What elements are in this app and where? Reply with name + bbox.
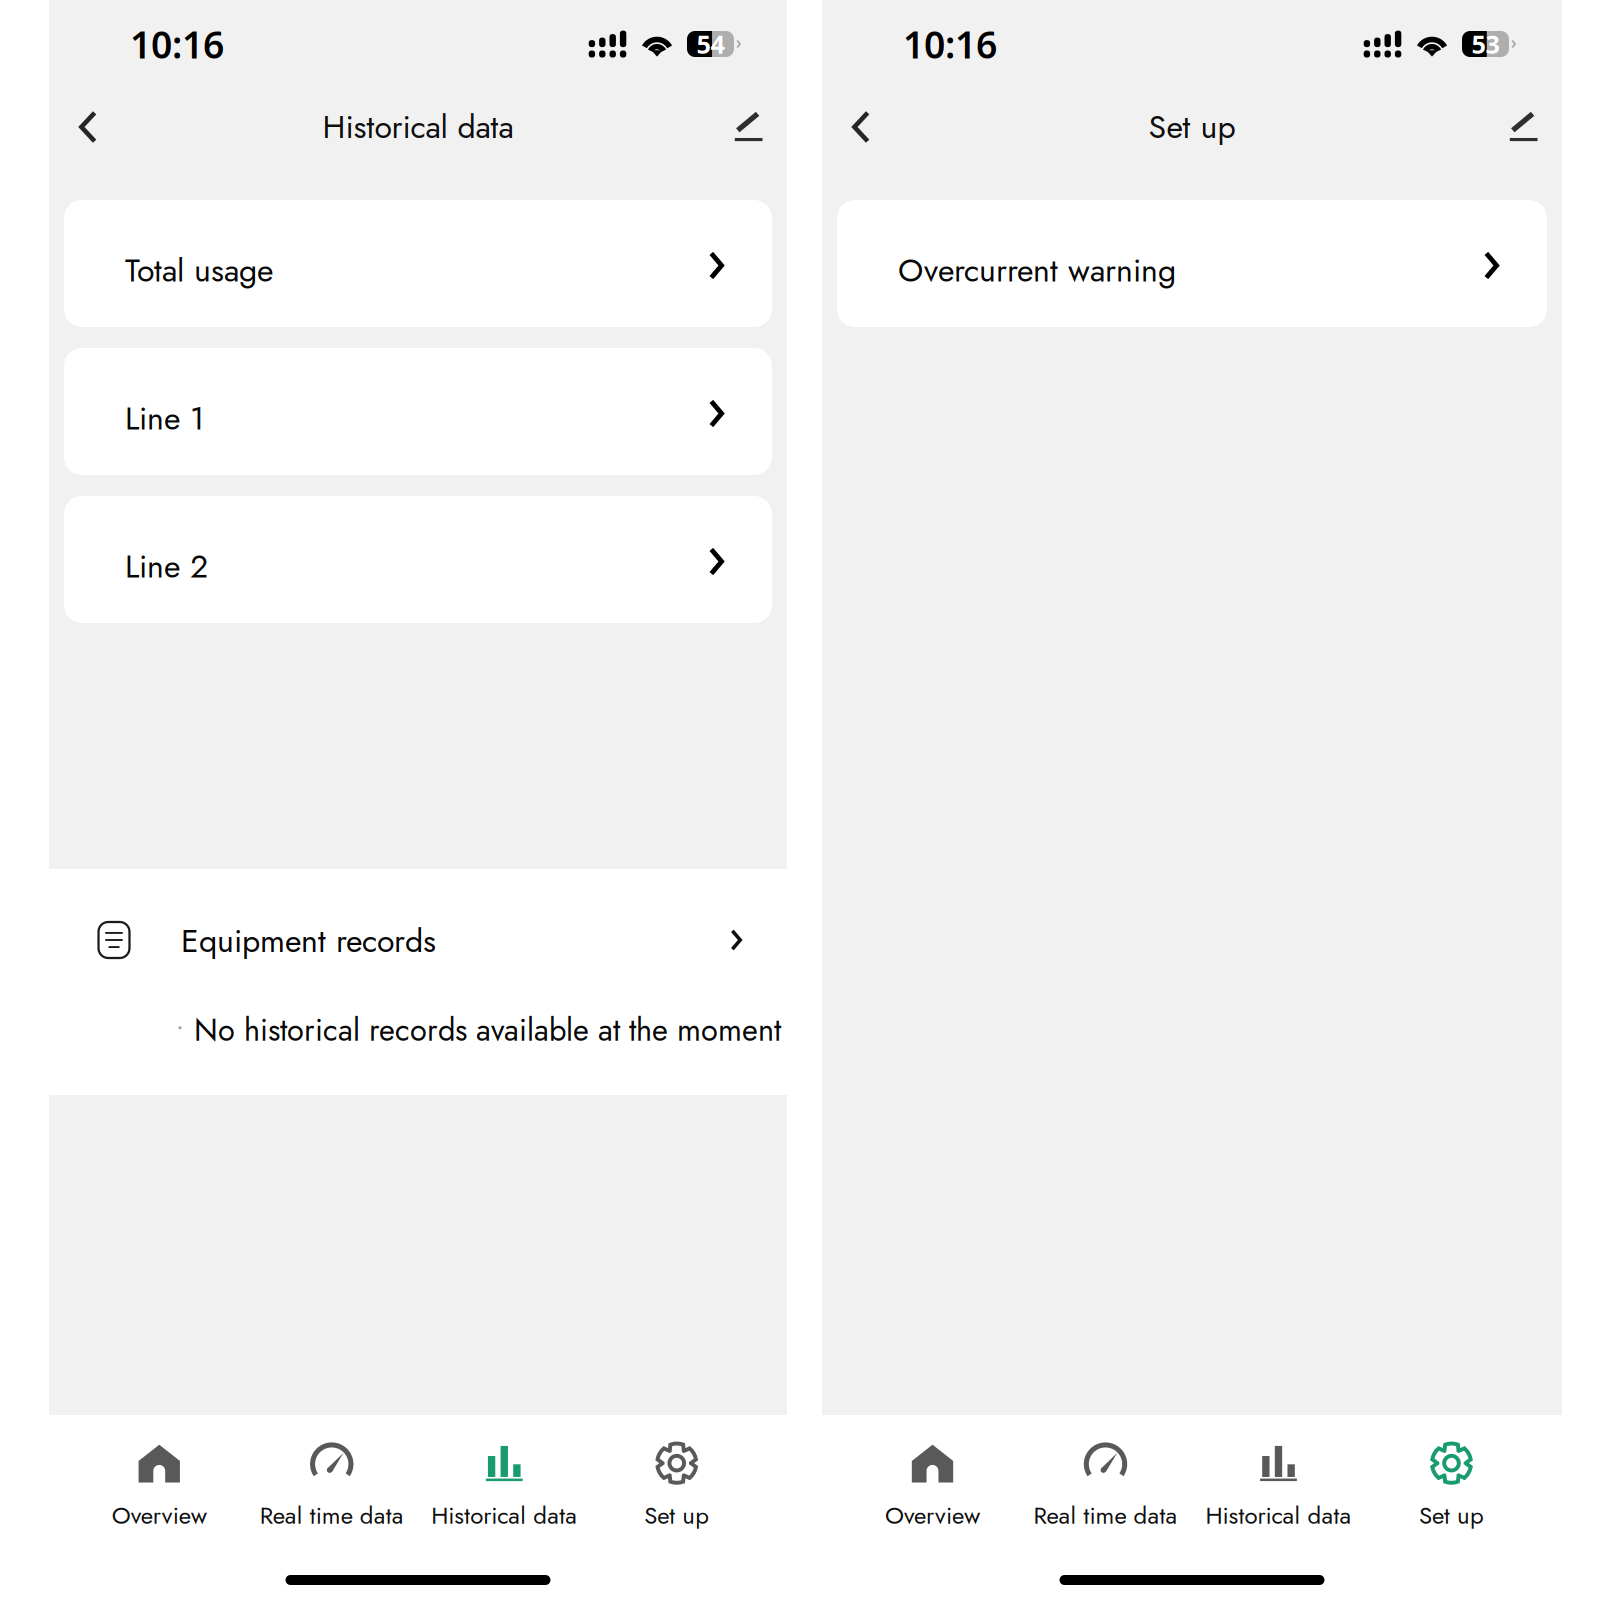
staticText: Historical data (322, 104, 513, 150)
staticText: Historical data (1205, 1498, 1351, 1533)
staticText: Total usage (125, 247, 273, 294)
staticText: 10:16 (903, 19, 997, 69)
staticText: Overview (112, 1498, 207, 1533)
staticText: Overview (885, 1498, 980, 1533)
button[interactable]: Line 2 (64, 496, 772, 623)
staticText: 53 (1471, 27, 1499, 61)
button[interactable]: Back (60, 99, 116, 155)
button[interactable]: Equipment records (35, 869, 801, 1001)
staticText: Equipment records (181, 918, 436, 964)
staticText: · (176, 1006, 184, 1044)
button[interactable]: Historical data (418, 1435, 590, 1535)
staticText: No historical records available at the m… (194, 1008, 781, 1052)
staticText: 54 (696, 27, 724, 61)
staticText: 10:16 (130, 19, 224, 69)
button[interactable]: Overcurrent warning (837, 200, 1547, 327)
button[interactable]: Overview (73, 1435, 245, 1535)
button[interactable]: Line 1 (64, 348, 772, 475)
staticText: Historical data (431, 1498, 577, 1533)
staticText: Overcurrent warning (898, 247, 1176, 294)
staticText: Set up (1148, 104, 1235, 150)
button[interactable]: Set up (590, 1435, 763, 1535)
staticText: Real time data (260, 1498, 404, 1533)
staticText: Line 1 (125, 395, 204, 442)
button[interactable]: Back (833, 99, 889, 155)
button[interactable]: Total usage (64, 200, 772, 327)
button[interactable]: Real time data (245, 1435, 418, 1535)
button[interactable]: Historical data (1192, 1435, 1365, 1535)
button[interactable]: Set up (1365, 1435, 1538, 1535)
staticText: Set up (1419, 1498, 1484, 1533)
staticText: Set up (644, 1498, 709, 1533)
staticText: Line 2 (125, 543, 208, 590)
button[interactable]: Real time data (1019, 1435, 1192, 1535)
button[interactable]: Edit (1495, 99, 1551, 155)
staticText: Real time data (1033, 1498, 1177, 1533)
button[interactable]: Edit (720, 99, 776, 155)
button[interactable]: Overview (846, 1435, 1019, 1535)
